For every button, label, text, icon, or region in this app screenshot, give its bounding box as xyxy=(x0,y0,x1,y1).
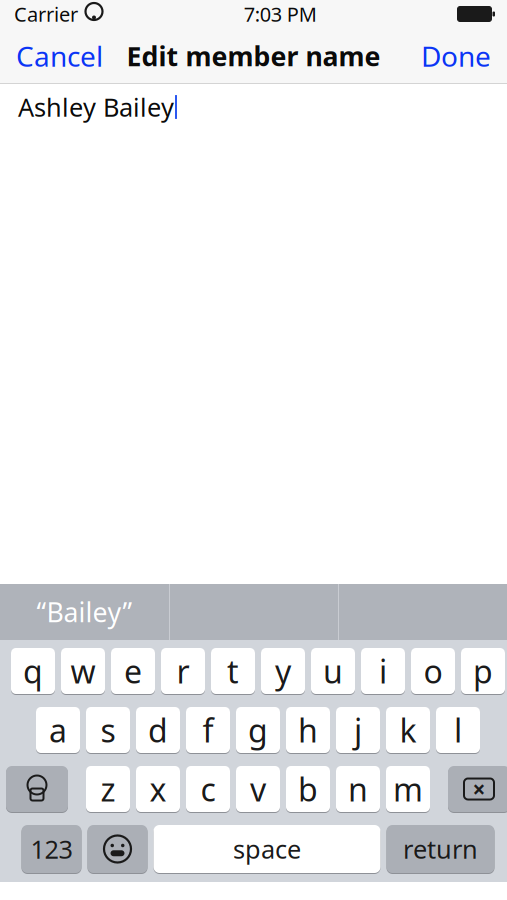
staticText: Carrier xyxy=(14,1,78,27)
staticText: s xyxy=(100,709,115,751)
button[interactable]: Delete xyxy=(448,765,507,813)
button[interactable]: w xyxy=(61,647,105,695)
button[interactable]: c xyxy=(186,765,230,813)
button[interactable]: a xyxy=(36,706,80,754)
button[interactable]: s xyxy=(86,706,130,754)
staticText: w xyxy=(70,650,95,692)
button[interactable]: p xyxy=(461,647,505,695)
button[interactable]: i xyxy=(361,647,405,695)
staticText: Done xyxy=(421,37,491,75)
button[interactable]: u xyxy=(311,647,355,695)
button[interactable]: z xyxy=(86,765,130,813)
staticText: x xyxy=(149,768,166,810)
staticText: v xyxy=(250,768,266,810)
staticText: “Bailey” xyxy=(36,594,132,630)
button[interactable]: x xyxy=(136,765,180,813)
button[interactable]: Done xyxy=(405,33,507,79)
staticText: space xyxy=(233,832,301,866)
staticText: Edit member name xyxy=(126,38,380,74)
staticText: p xyxy=(473,650,493,692)
staticText: t xyxy=(227,650,239,692)
button[interactable]: t xyxy=(211,647,255,695)
staticText: return xyxy=(403,832,478,866)
button[interactable]: space xyxy=(153,824,380,874)
staticText: 123 xyxy=(30,832,72,866)
button[interactable]: n xyxy=(336,765,380,813)
button[interactable]: e xyxy=(111,647,155,695)
button[interactable]: return xyxy=(386,824,494,874)
staticText: h xyxy=(298,709,318,751)
staticText: c xyxy=(200,768,215,810)
staticText: Cancel xyxy=(16,37,103,75)
button[interactable]: v xyxy=(236,765,280,813)
staticText: y xyxy=(275,650,291,692)
button[interactable]: “Bailey” xyxy=(0,584,169,640)
button[interactable]: Shift xyxy=(6,765,68,813)
button[interactable]: b xyxy=(286,765,330,813)
staticText: a xyxy=(49,709,67,751)
staticText: q xyxy=(23,650,43,692)
staticText: i xyxy=(379,650,387,692)
button[interactable]: k xyxy=(386,706,430,754)
button[interactable]: f xyxy=(186,706,230,754)
staticText: Ashley Bailey xyxy=(18,90,174,124)
staticText: n xyxy=(348,768,368,810)
staticText: m xyxy=(393,768,423,810)
button[interactable]: d xyxy=(136,706,180,754)
button[interactable]: 123 xyxy=(21,824,81,874)
staticText: g xyxy=(248,709,268,751)
staticText: b xyxy=(298,768,318,810)
staticText: × xyxy=(472,774,485,804)
button[interactable]: j xyxy=(336,706,380,754)
staticText: z xyxy=(100,768,115,810)
button[interactable]: Cancel xyxy=(0,33,119,79)
staticText: 7:03 PM xyxy=(244,1,317,27)
button[interactable]: g xyxy=(236,706,280,754)
staticText: l xyxy=(454,709,462,751)
staticText: k xyxy=(399,709,416,751)
staticText: u xyxy=(323,650,343,692)
button[interactable]: y xyxy=(261,647,305,695)
button[interactable]: o xyxy=(411,647,455,695)
staticText: d xyxy=(148,709,168,751)
button[interactable]: q xyxy=(11,647,55,695)
staticText: f xyxy=(202,709,213,751)
button[interactable]: r xyxy=(161,647,205,695)
staticText: e xyxy=(124,650,142,692)
button[interactable]: Emoji xyxy=(87,824,147,874)
staticText: o xyxy=(423,650,442,692)
button[interactable]: h xyxy=(286,706,330,754)
staticText: r xyxy=(176,650,189,692)
button[interactable]: l xyxy=(436,706,480,754)
staticText: j xyxy=(354,709,362,751)
button[interactable]: m xyxy=(386,765,430,813)
